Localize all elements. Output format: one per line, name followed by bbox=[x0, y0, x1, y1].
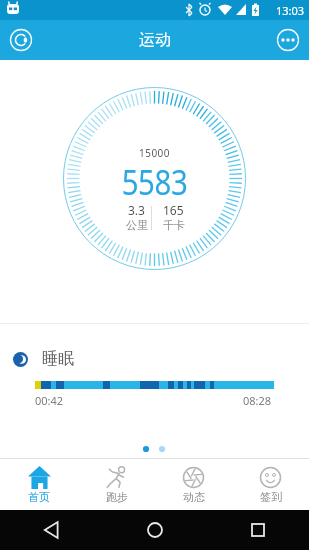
button[interactable]: 动态 bbox=[155, 459, 232, 510]
staticText: 08:28 bbox=[243, 393, 272, 408]
button[interactable] bbox=[103, 510, 206, 550]
staticText: 首页 bbox=[28, 490, 50, 504]
staticText: 165 bbox=[163, 202, 184, 218]
staticText: 动态 bbox=[183, 490, 205, 504]
button[interactable]: 签到 bbox=[232, 459, 309, 510]
staticText: 15000 bbox=[0, 146, 309, 160]
button[interactable]: 睡眠 bbox=[13, 348, 133, 370]
button[interactable] bbox=[10, 29, 32, 51]
staticText: 签到 bbox=[260, 490, 282, 504]
button[interactable]: 首页 bbox=[0, 459, 78, 510]
staticText: 00:42 bbox=[35, 393, 64, 408]
staticText: 千卡 bbox=[163, 218, 185, 232]
staticText: 运动 bbox=[139, 30, 171, 50]
button[interactable] bbox=[277, 29, 299, 51]
button[interactable] bbox=[0, 510, 103, 550]
button[interactable]: 跑步 bbox=[78, 459, 155, 510]
staticText: 5583 bbox=[25, 158, 284, 206]
staticText: 睡眠 bbox=[42, 349, 74, 369]
staticText: 公里 bbox=[126, 218, 148, 232]
button[interactable] bbox=[206, 510, 309, 550]
staticText: 3.3 bbox=[128, 202, 145, 218]
staticText: 13:03 bbox=[276, 3, 305, 18]
staticText: 跑步 bbox=[106, 490, 128, 504]
